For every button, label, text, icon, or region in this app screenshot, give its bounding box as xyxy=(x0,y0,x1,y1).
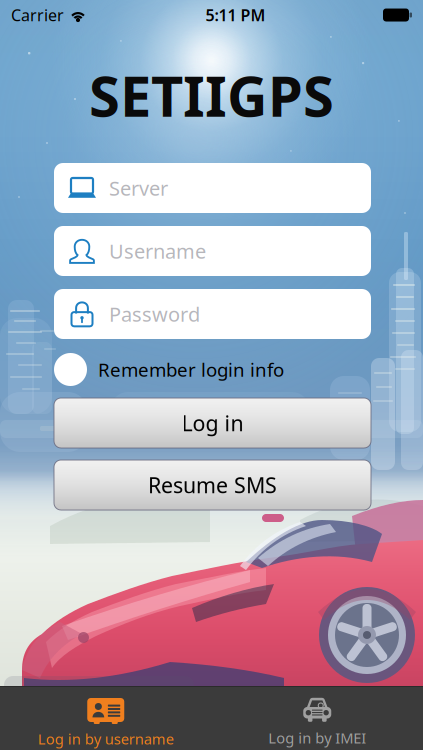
button[interactable]: Log in by username xyxy=(0,686,211,750)
staticText: Log in by username xyxy=(38,729,174,748)
staticText: SETIIGPS xyxy=(89,58,334,132)
button[interactable]: Resume SMS xyxy=(54,460,371,510)
button[interactable]: Log in xyxy=(54,398,371,448)
staticText: Server xyxy=(109,175,168,201)
button[interactable]: Server xyxy=(54,163,371,213)
button[interactable]: Password xyxy=(54,289,371,339)
button[interactable]: Username xyxy=(54,226,371,276)
staticText: 5:11 PM xyxy=(205,4,265,26)
button[interactable]: Log in by IMEI xyxy=(211,686,423,750)
staticText: Log in xyxy=(181,409,243,437)
staticText: Username xyxy=(109,238,206,264)
button[interactable]: Remember login info xyxy=(54,353,87,386)
staticText: Password xyxy=(109,301,200,327)
staticText: Log in by IMEI xyxy=(268,728,366,747)
staticText: Resume SMS xyxy=(148,471,277,499)
staticText: Carrier xyxy=(11,4,64,26)
staticText: Remember login info xyxy=(98,357,284,382)
